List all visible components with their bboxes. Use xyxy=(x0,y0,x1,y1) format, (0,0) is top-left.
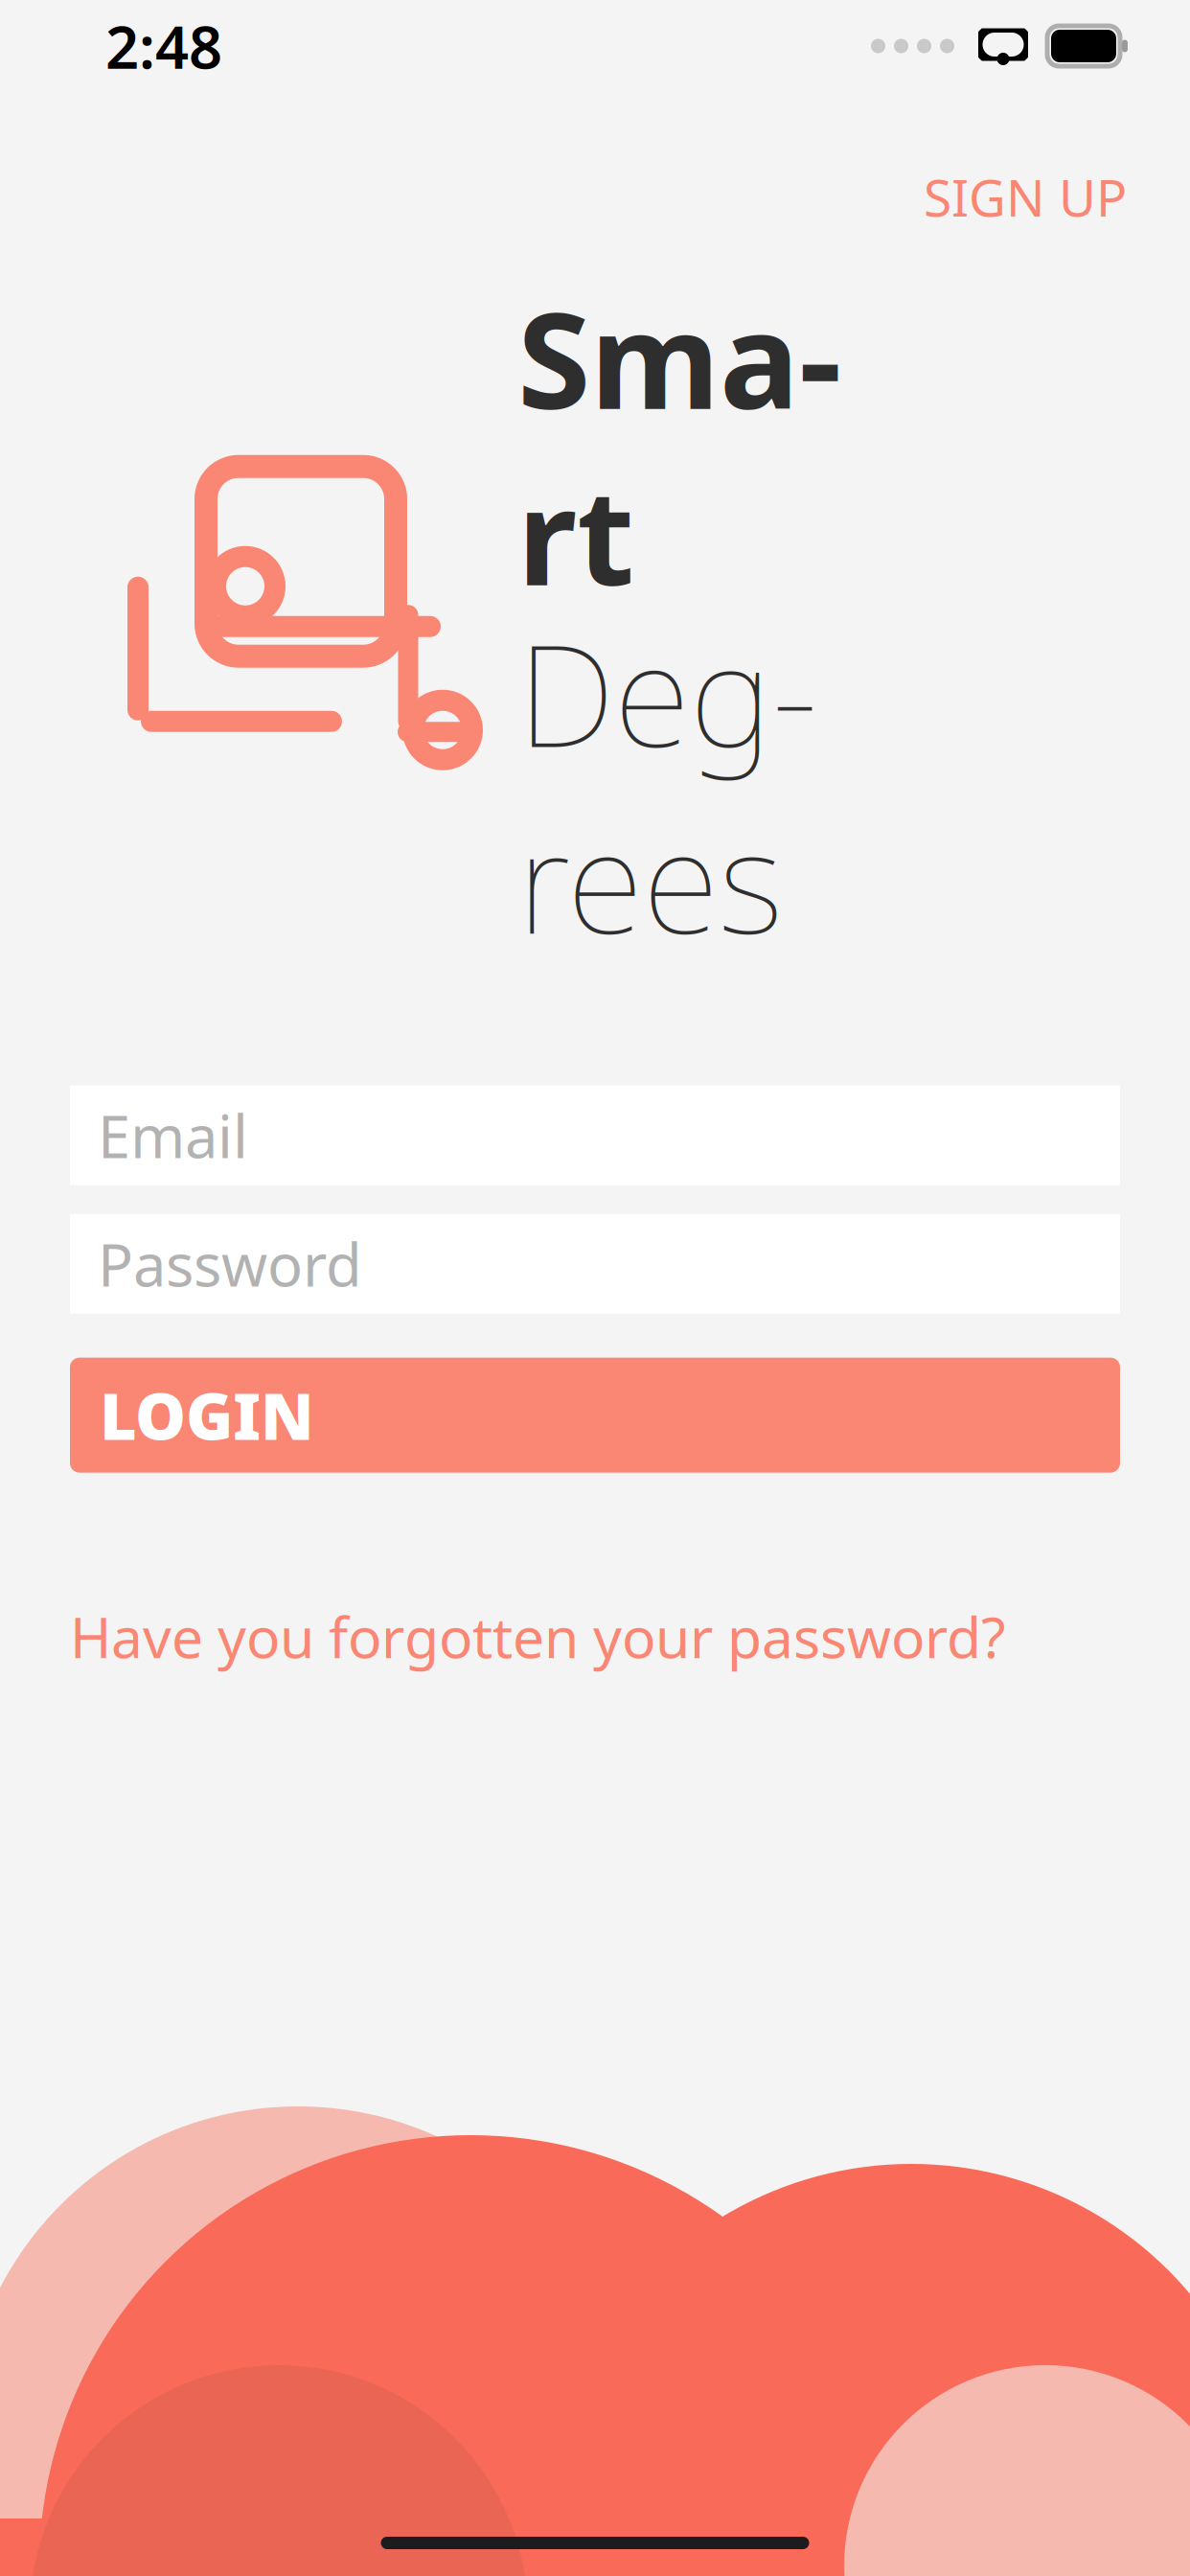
staticText: Degrees xyxy=(517,599,817,972)
staticText: SIGN UP xyxy=(924,163,1127,231)
button[interactable]: Email xyxy=(70,1085,1120,1185)
button[interactable]: Password xyxy=(70,1214,1120,1313)
button[interactable]: Have you forgotten your password? xyxy=(70,1589,1005,1683)
staticText: Email xyxy=(98,1096,248,1174)
staticText: Password xyxy=(98,1225,362,1303)
button[interactable]: LOGIN xyxy=(70,1358,1120,1473)
staticText: Smart xyxy=(517,269,841,622)
staticText: LOGIN xyxy=(100,1373,314,1458)
staticText: Have you forgotten your password? xyxy=(70,1599,1005,1674)
button[interactable]: SIGN UP xyxy=(914,151,1136,242)
staticText: 2:48 xyxy=(105,7,222,85)
